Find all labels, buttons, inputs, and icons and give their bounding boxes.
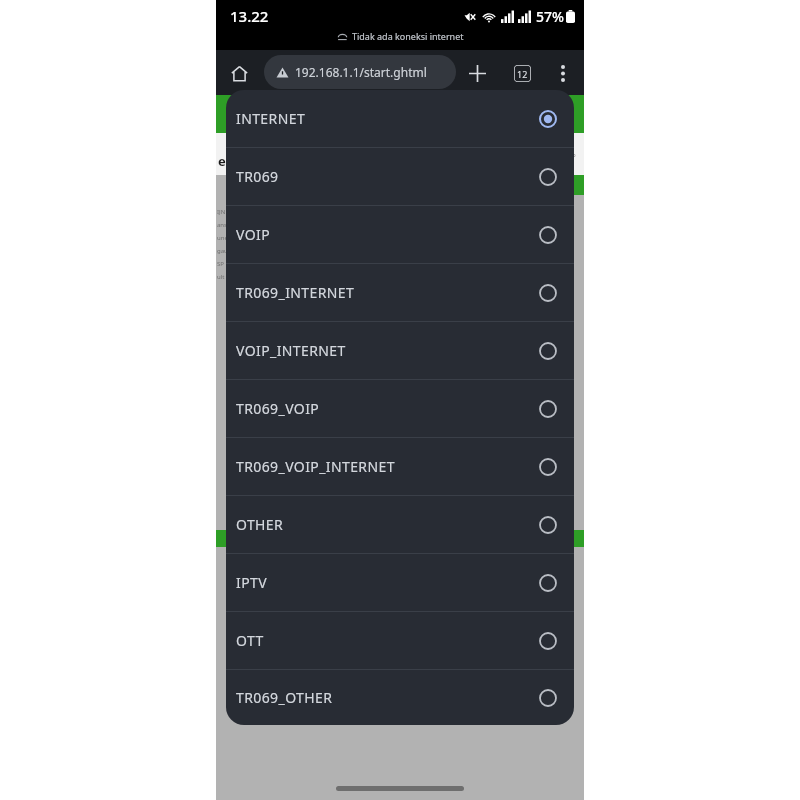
button[interactable]: TR069_VOIP xyxy=(226,380,574,437)
button[interactable]: TR069_INTERNET xyxy=(226,264,574,321)
staticText: 57% xyxy=(536,7,564,26)
staticText: INTERNET xyxy=(236,109,538,128)
button[interactable]: VOIP xyxy=(226,206,574,263)
staticText: TR069_OTHER xyxy=(236,688,538,707)
button[interactable]: TR069_OTHER xyxy=(226,670,574,725)
button[interactable]: OTHER xyxy=(226,496,574,553)
button[interactable]: More options xyxy=(546,56,580,90)
staticText: VOIP_INTERNET xyxy=(236,341,538,360)
staticText: une xyxy=(217,234,228,242)
staticText: gau xyxy=(217,247,228,255)
staticText: VOIP xyxy=(236,225,538,244)
staticText: 13.22 xyxy=(230,6,269,26)
button[interactable]: VOIP_INTERNET xyxy=(226,322,574,379)
staticText: OTT xyxy=(236,631,538,650)
staticText: Tidak ada koneksi internet xyxy=(352,30,464,42)
staticText: TR069 xyxy=(236,167,538,186)
staticText: IJN xyxy=(217,208,226,216)
button[interactable]: IPTV xyxy=(226,554,574,611)
button[interactable]: INTERNET xyxy=(226,90,574,147)
staticText: ans xyxy=(217,221,227,229)
staticText: TR069_INTERNET xyxy=(236,283,538,302)
button[interactable]: TR069_VOIP_INTERNET xyxy=(226,438,574,495)
button[interactable]: TR069 xyxy=(226,148,574,205)
staticText: OTHER xyxy=(236,515,538,534)
staticText: etw xyxy=(218,152,243,170)
staticText: 12 xyxy=(517,68,528,80)
button[interactable]: New tab xyxy=(460,56,494,90)
staticText: IPTV xyxy=(236,573,538,592)
staticText: TR069_VOIP_INTERNET xyxy=(236,457,538,476)
button[interactable]: Home xyxy=(222,56,256,90)
staticText: ult xyxy=(217,273,225,281)
staticText: TR069_VOIP xyxy=(236,399,538,418)
button[interactable]: Tabs xyxy=(505,56,539,90)
button[interactable]: 192.168.1.1/start.ghtml xyxy=(264,55,456,89)
staticText: tab xyxy=(568,152,576,159)
button[interactable]: OTT xyxy=(226,612,574,669)
staticText: 192.168.1.1/start.ghtml xyxy=(295,64,427,80)
staticText: SP xyxy=(217,260,224,268)
